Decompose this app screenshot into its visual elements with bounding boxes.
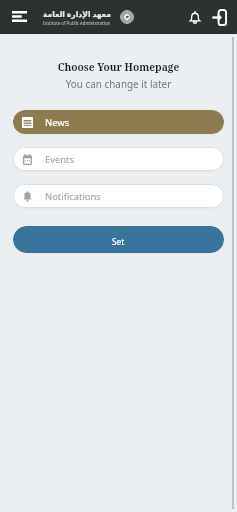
button[interactable]: Sign in [207, 5, 231, 29]
button[interactable]: Notifications [13, 184, 224, 208]
button[interactable]: Open navigation menu [6, 4, 32, 30]
staticText: News [45, 116, 70, 129]
staticText: Events [45, 153, 74, 166]
button[interactable]: Set [13, 226, 224, 253]
staticText: Set [112, 236, 125, 247]
button[interactable]: Events [13, 147, 224, 171]
staticText: Choose Your Homepage [0, 60, 237, 74]
button[interactable]: News [13, 110, 224, 134]
button[interactable]: Notifications [183, 5, 207, 29]
staticText: Institute of Public Administration [43, 20, 111, 26]
staticText: Notifications [45, 190, 101, 203]
staticText: You can change it later [0, 77, 237, 90]
staticText: معهد الإدارة العامة [43, 9, 111, 19]
